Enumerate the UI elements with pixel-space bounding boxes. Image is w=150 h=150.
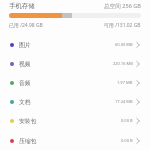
staticText: 文档	[19, 98, 31, 105]
button[interactable]: 压缩包	[0, 131, 150, 150]
staticText: 60.00 MB	[115, 42, 133, 47]
button[interactable]: 图片	[0, 35, 150, 54]
button[interactable]: 文档	[0, 92, 150, 111]
staticText: 17.24 MB	[115, 99, 133, 104]
button[interactable]: 安装包	[0, 111, 150, 130]
other: 打开压缩包详情	[136, 138, 140, 144]
staticText: 220.16 MB	[113, 61, 133, 66]
staticText: 手机存储	[9, 2, 35, 10]
staticText: 安装包	[19, 117, 37, 124]
staticText: 0.00 B	[121, 118, 133, 123]
other: 打开文档详情	[136, 99, 140, 105]
staticText: 图片	[19, 41, 31, 48]
other: 打开图片详情	[136, 42, 140, 48]
staticText: 已用 /24.98 GB	[9, 22, 43, 29]
staticText: 压缩包	[19, 137, 37, 144]
button[interactable]: 音频	[0, 73, 150, 92]
staticText: 视频	[19, 60, 31, 67]
staticText: 0.00 B	[121, 138, 133, 143]
other: 打开视频详情	[136, 61, 140, 67]
staticText: 总空间 256 GB	[104, 2, 141, 10]
other: 打开安装包详情	[136, 118, 140, 124]
other: 打开音频详情	[136, 80, 140, 86]
staticText: 音频	[19, 79, 31, 86]
staticText: 1.97 MB	[117, 80, 133, 85]
staticText: 可用 /131.02 GB	[104, 22, 141, 29]
button[interactable]: 视频	[0, 54, 150, 73]
